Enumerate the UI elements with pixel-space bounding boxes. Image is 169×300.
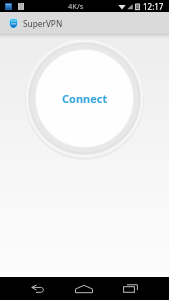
button[interactable]: Recent apps <box>107 277 154 300</box>
staticText: 12:17 <box>143 1 164 12</box>
staticText: Connect <box>62 91 108 106</box>
button[interactable]: Connect <box>25 39 144 158</box>
button[interactable]: Back <box>13 277 60 300</box>
staticText: SuperVPN <box>23 18 63 29</box>
staticText: 4K/s <box>68 1 84 11</box>
button[interactable]: Home <box>60 277 107 300</box>
